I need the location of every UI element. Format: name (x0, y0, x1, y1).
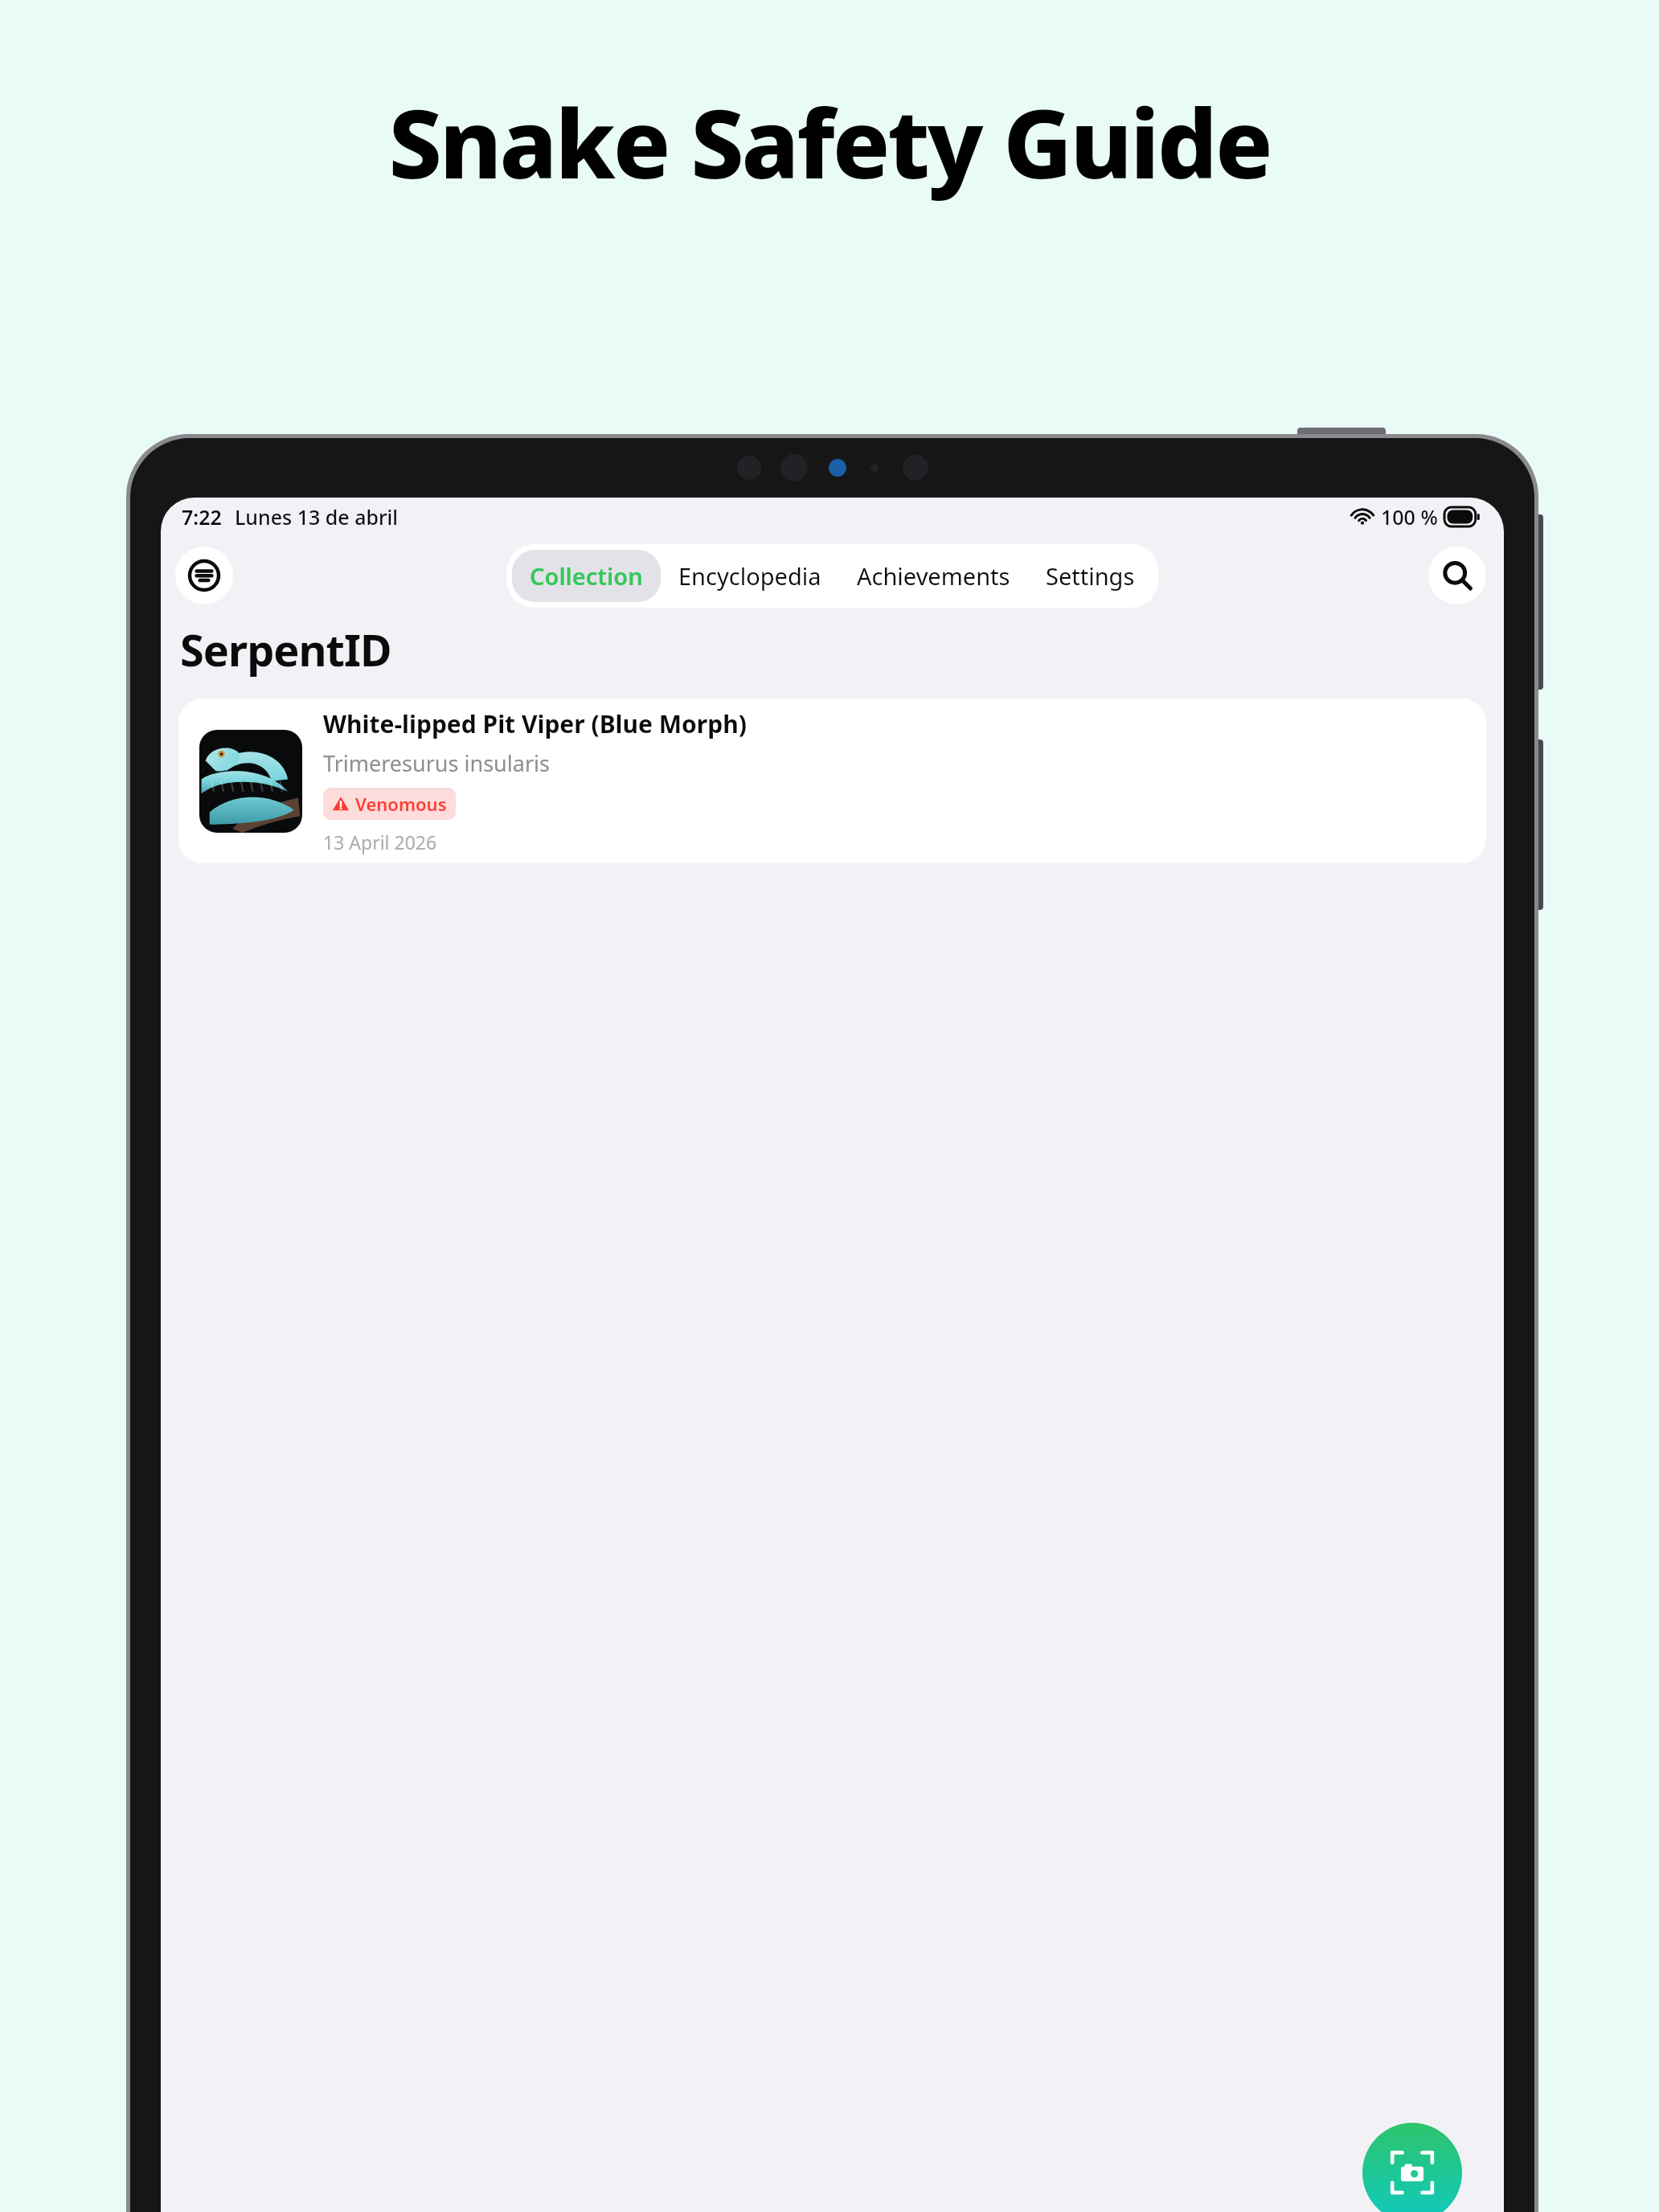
staticText: Snake Safety Guide (388, 77, 1271, 207)
staticText: 100 % (1381, 503, 1438, 530)
staticText: Lunes 13 de abril (235, 503, 399, 530)
button[interactable]: Search (1428, 547, 1486, 604)
button[interactable]: Collection (512, 550, 661, 602)
staticText: 13 April 2026 (323, 829, 437, 854)
button[interactable]: Settings (1028, 550, 1153, 602)
staticText: Trimeresurus insularis (323, 748, 550, 778)
button[interactable]: Filter menu (175, 547, 233, 604)
staticText: Collection (530, 560, 643, 592)
button[interactable]: Encyclopedia (661, 550, 839, 602)
staticText: 7:22 (182, 503, 222, 530)
button[interactable]: Achievements (839, 550, 1028, 602)
staticText: Encyclopedia (678, 560, 821, 592)
staticText: Settings (1046, 560, 1135, 592)
staticText: Achievements (857, 560, 1010, 592)
staticText: Venomous (355, 792, 447, 816)
button[interactable]: White-lipped Pit Viper (Blue Morph) (178, 698, 1486, 863)
button[interactable]: Scan snake with camera (1362, 2123, 1462, 2212)
staticText: White-lipped Pit Viper (Blue Morph) (323, 707, 747, 740)
staticText: SerpentID (180, 620, 391, 679)
